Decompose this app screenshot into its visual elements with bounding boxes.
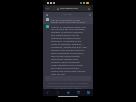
- staticText: chat.openai.com: [60, 7, 78, 10]
- button[interactable]: Bookmarks: [75, 89, 82, 96]
- staticText: AA: [46, 7, 49, 10]
- button[interactable]: Forward: [54, 89, 61, 96]
- button[interactable]: Share: [65, 89, 72, 96]
- staticText: New chat: [63, 13, 72, 16]
- button[interactable]: Back: [44, 89, 51, 96]
- staticText: Free Research Preview. ChatGPT may produ…: [45, 82, 91, 89]
- button[interactable]: New chat: [88, 13, 91, 16]
- button[interactable]: Reload: [87, 7, 90, 10]
- staticText: Out of all countries on this planet, whi…: [51, 18, 87, 24]
- button[interactable]: Menu: [45, 13, 48, 16]
- staticText: I am an AI language model and do not hav…: [51, 25, 87, 76]
- button[interactable]: AA: [45, 6, 91, 11]
- button[interactable]: Tabs: [85, 89, 92, 96]
